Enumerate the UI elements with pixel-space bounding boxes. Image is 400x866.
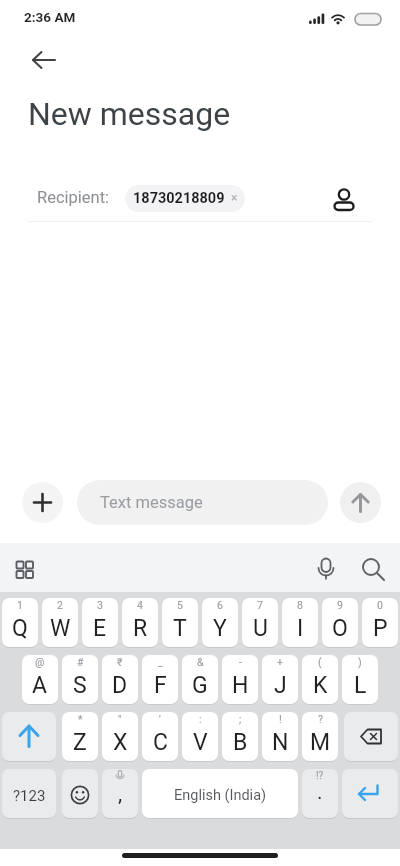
staticText: Y [213,615,227,642]
staticText: ' [159,713,161,725]
staticText: N [272,729,289,756]
staticText: ( [318,656,322,668]
staticText: 5 [177,599,183,611]
staticText: New message [28,95,231,133]
staticText: ₹ [117,656,123,668]
staticText: V [193,729,208,756]
staticText: ) [358,656,362,668]
staticText: Recipient: [37,188,110,207]
staticText: 3 [97,599,103,611]
staticText: M [310,729,331,756]
staticText: ; [239,713,242,725]
staticText: _ [158,656,163,668]
staticText: J [274,672,287,699]
staticText: !? [316,770,324,782]
staticText: Text message [100,493,203,512]
staticText: B [233,729,248,756]
staticText: 18730218809 [133,190,225,207]
staticText: * [78,713,83,725]
staticText: D [112,672,128,699]
staticText: U [253,615,268,642]
staticText: O [332,615,348,642]
staticText: T [173,615,187,642]
staticText: & [197,656,204,668]
staticText: F [154,672,167,699]
staticText: 1 [17,599,23,611]
staticText: 2 [57,599,63,611]
staticText: C [153,729,168,756]
staticText: 9 [337,599,343,611]
staticText: G [192,672,208,699]
staticText: English (India) [174,787,267,804]
staticText: Z [73,729,87,756]
staticText: P [373,615,388,642]
staticText: . [317,780,323,805]
staticText: ?123 [13,787,46,805]
staticText: X [113,729,128,756]
staticText: ? [318,713,323,725]
staticText: H [232,672,249,699]
staticText: - [239,656,242,668]
staticText: @ [35,656,45,668]
staticText: # [77,656,84,668]
staticText: " [118,713,122,725]
staticText: 6 [217,599,223,611]
staticText: S [73,672,87,699]
staticText: + [277,656,283,668]
staticText: 0 [377,599,383,611]
staticText: × [231,191,238,205]
staticText: 7 [257,599,263,611]
staticText: L [354,672,367,699]
staticText: 4 [137,599,143,611]
staticText: 8 [297,599,303,611]
staticText: R [133,615,148,642]
staticText: 2:36 AM [24,9,76,25]
staticText: I [297,615,304,642]
staticText: A [32,672,48,699]
staticText: Q [12,615,28,642]
staticText: W [50,615,71,642]
staticText: ! [279,713,282,725]
staticText: , [118,782,123,807]
staticText: : [199,713,202,725]
staticText: K [313,672,328,699]
staticText: E [93,615,107,642]
